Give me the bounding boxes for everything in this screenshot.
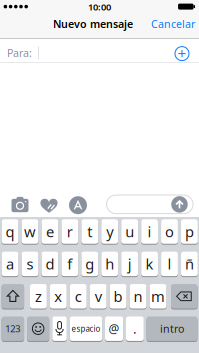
staticText: . bbox=[133, 320, 137, 337]
button[interactable]: l bbox=[161, 252, 178, 276]
staticText: m bbox=[151, 287, 165, 306]
button[interactable]: ñ bbox=[181, 252, 198, 276]
button[interactable]: g bbox=[81, 252, 98, 276]
button[interactable]: i bbox=[141, 219, 158, 244]
staticText: c bbox=[75, 287, 82, 306]
button[interactable]: Cámara bbox=[10, 196, 30, 214]
button[interactable]: . bbox=[126, 316, 144, 341]
staticText: intro bbox=[160, 322, 184, 336]
staticText: r bbox=[67, 222, 73, 241]
staticText: b bbox=[114, 287, 123, 306]
staticText: y bbox=[106, 222, 113, 241]
button[interactable]: Digital Touch bbox=[39, 195, 59, 215]
staticText: p bbox=[185, 222, 194, 241]
staticText: i bbox=[148, 222, 152, 241]
button[interactable]: j bbox=[121, 252, 138, 276]
button[interactable]: e bbox=[41, 219, 58, 244]
staticText: j bbox=[128, 254, 132, 274]
button[interactable]: w bbox=[22, 219, 38, 244]
button[interactable]: d bbox=[41, 252, 58, 276]
button[interactable]: Cancelar bbox=[151, 17, 195, 31]
button[interactable]: b bbox=[110, 284, 126, 309]
button[interactable]: k bbox=[141, 252, 158, 276]
staticText: 123 bbox=[5, 322, 20, 335]
staticText: f bbox=[67, 254, 72, 274]
button[interactable]: v bbox=[90, 284, 107, 309]
staticText: Para: bbox=[7, 46, 32, 60]
button[interactable]: espacio bbox=[70, 316, 102, 341]
staticText: Nuevo mensaje bbox=[53, 17, 133, 31]
button[interactable]: Apps de iMessage bbox=[69, 196, 87, 214]
staticText: @ bbox=[109, 321, 120, 337]
button[interactable]: Añadir contacto bbox=[175, 47, 189, 61]
button[interactable]: y bbox=[101, 219, 118, 244]
button[interactable]: p bbox=[181, 219, 198, 244]
button[interactable]: f bbox=[61, 252, 78, 276]
button[interactable]: a bbox=[2, 252, 18, 276]
staticText: a bbox=[6, 254, 14, 274]
staticText: q bbox=[6, 222, 15, 241]
button[interactable]: @ bbox=[105, 316, 123, 341]
staticText: u bbox=[125, 222, 134, 241]
button[interactable]: r bbox=[61, 219, 78, 244]
button[interactable]: Enviar bbox=[171, 196, 188, 213]
staticText: ñ bbox=[185, 254, 194, 274]
staticText: h bbox=[105, 254, 114, 274]
button[interactable]: z bbox=[30, 284, 47, 309]
button[interactable]: h bbox=[101, 252, 118, 276]
button[interactable]: t bbox=[81, 219, 98, 244]
button[interactable]: Borrar bbox=[171, 284, 198, 309]
button[interactable]: Números bbox=[2, 316, 24, 341]
staticText: d bbox=[45, 254, 54, 274]
staticText: l bbox=[167, 254, 171, 274]
button[interactable]: x bbox=[50, 284, 67, 309]
staticText: k bbox=[146, 254, 154, 274]
staticText: o bbox=[165, 222, 174, 241]
staticText: e bbox=[46, 222, 54, 241]
staticText: espacio bbox=[71, 323, 100, 334]
button[interactable]: Mayúsculas bbox=[2, 284, 24, 309]
button[interactable]: s bbox=[22, 252, 38, 276]
staticText: 10:00 bbox=[88, 1, 111, 13]
button[interactable]: Dictar bbox=[52, 316, 67, 341]
staticText: w bbox=[24, 222, 36, 241]
button[interactable]: q bbox=[2, 219, 18, 244]
button[interactable]: intro bbox=[147, 316, 197, 341]
button[interactable]: c bbox=[70, 284, 87, 309]
staticText: g bbox=[85, 254, 94, 274]
staticText: v bbox=[95, 287, 102, 306]
staticText: x bbox=[54, 287, 62, 306]
button[interactable]: Emoji bbox=[27, 316, 49, 341]
button[interactable]: n bbox=[130, 284, 146, 309]
staticText: z bbox=[35, 287, 42, 306]
button[interactable]: m bbox=[150, 284, 166, 309]
staticText: n bbox=[134, 287, 143, 306]
button[interactable]: u bbox=[121, 219, 138, 244]
button[interactable]: o bbox=[161, 219, 178, 244]
staticText: t bbox=[87, 222, 92, 241]
staticText: Cancelar bbox=[151, 17, 195, 31]
staticText: s bbox=[26, 254, 33, 274]
